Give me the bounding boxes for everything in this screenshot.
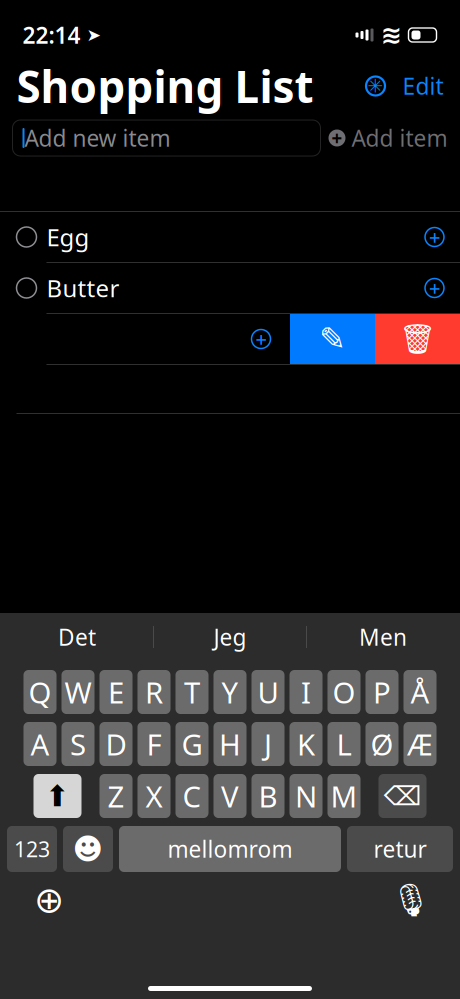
staticText: mellomrom [167,834,292,864]
button[interactable]: Z [99,774,132,818]
button[interactable]: T [175,670,208,714]
button[interactable]: L [327,722,360,766]
button[interactable]: E [99,670,132,714]
button[interactable]: mellomrom [119,826,341,872]
staticText: ⬆ [45,779,70,813]
staticText: retur [373,834,426,864]
button[interactable]: V [213,774,246,818]
staticText: ✎ [319,321,346,357]
button[interactable]: Q [23,670,56,714]
staticText: B [258,776,277,815]
button[interactable]: ⬆ [33,774,81,818]
staticText: + [331,126,342,150]
button[interactable]: D [99,722,132,766]
staticText: P [373,672,391,711]
button[interactable]: W [61,670,94,714]
button[interactable]: Det [1,617,153,657]
button[interactable]: Edit [390,69,443,103]
staticText: + [429,224,440,250]
button[interactable]: R [137,670,170,714]
staticText: Add new item [24,123,170,153]
button[interactable]: X [137,774,170,818]
button[interactable]: B [251,774,284,818]
staticText: L [336,724,351,763]
button[interactable]: K [289,722,322,766]
staticText: Jeg [213,622,246,652]
button[interactable]: Butter [0,263,460,313]
staticText: D [105,724,126,763]
button[interactable]: ⌫ [378,774,426,818]
staticText: A [30,724,49,763]
button[interactable]: + [328,120,447,156]
staticText: U [257,672,278,711]
button[interactable]: Delete item [375,314,460,364]
button[interactable]: Men [307,617,459,657]
staticText: + [255,326,266,352]
staticText: S [70,724,86,763]
staticText: Æ [407,724,433,763]
button[interactable]: M [327,774,360,818]
button[interactable]: O [327,670,360,714]
button[interactable]: C [175,774,208,818]
button[interactable]: 123 [7,826,57,872]
staticText: ≋ [380,21,401,49]
staticText: ➤ [80,25,101,45]
staticText: Butter [46,272,119,304]
staticText: G [181,724,202,763]
staticText: 🎙 [390,882,431,918]
staticText: T [184,672,200,711]
staticText: V [221,776,239,815]
staticText: Det [58,622,96,652]
staticText: I [301,672,311,711]
button[interactable]: Ø [365,722,398,766]
staticText: Egg [46,221,89,253]
staticText: J [264,724,272,763]
button[interactable]: Settings [360,69,390,103]
button[interactable]: Edit item [290,314,375,364]
staticText: ⌫ [383,781,421,811]
button[interactable]: P [365,670,398,714]
staticText: Q [28,672,51,711]
staticText: Ø [370,724,393,763]
button[interactable]: U [251,670,284,714]
button[interactable]: I [289,670,322,714]
staticText: R [145,672,163,711]
button[interactable]: Dictation [389,878,433,922]
staticText: F [146,724,161,763]
staticText: 🗑 [399,322,436,356]
staticText: K [297,724,315,763]
staticText: Men [359,622,407,652]
staticText: X [145,776,162,815]
staticText: N [295,776,317,815]
staticText: ☻ [72,832,103,866]
button[interactable]: G [175,722,208,766]
staticText: 123 [14,835,50,863]
staticText: ✳ [367,75,383,97]
button[interactable]: Next keyboard [27,878,71,922]
button[interactable]: S [61,722,94,766]
staticText: Z [107,776,124,815]
staticText: M [330,776,357,815]
staticText: H [219,724,241,763]
staticText: + [429,275,440,301]
button[interactable]: Y [213,670,246,714]
button[interactable]: ☻ [63,826,113,872]
staticText: Å [410,672,429,711]
button[interactable]: Æ [403,722,436,766]
button[interactable]: Å [403,670,436,714]
button[interactable]: N [289,774,322,818]
staticText: Add item [351,123,447,153]
button[interactable]: F [137,722,170,766]
button[interactable]: H [213,722,246,766]
button[interactable]: Jeg [154,617,306,657]
staticText: W [64,672,91,711]
staticText: Shopping List [16,57,313,115]
button[interactable]: J [251,722,284,766]
button[interactable]: retur [347,826,453,872]
staticText: 22:14 [22,20,80,50]
staticText: ⊕ [34,880,64,920]
staticText: O [332,672,355,711]
button[interactable]: A [23,722,56,766]
button[interactable]: Egg [0,212,460,262]
staticText: Y [221,672,238,711]
